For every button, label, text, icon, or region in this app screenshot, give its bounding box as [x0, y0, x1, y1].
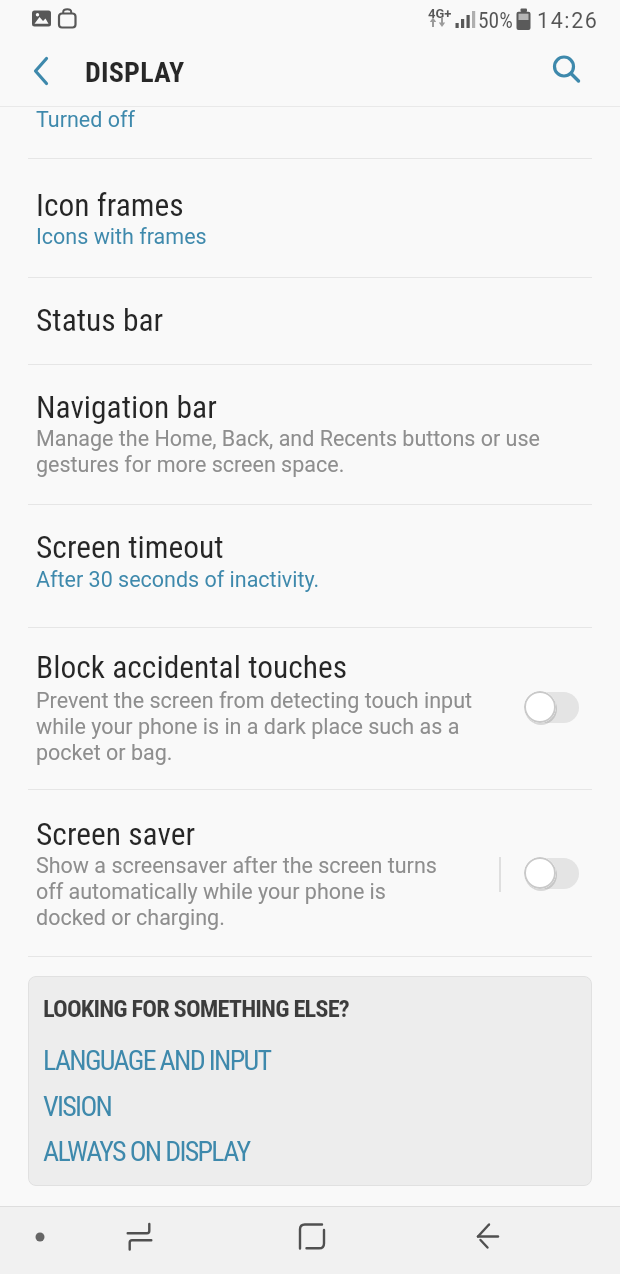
button[interactable]: [540, 40, 596, 96]
staticText: VISION: [43, 1090, 112, 1123]
button[interactable]: VISION: [36, 1082, 316, 1122]
staticText: After 30 seconds of inactivity.: [36, 567, 320, 592]
button[interactable]: Status bar: [0, 278, 620, 364]
staticText: Turned off: [36, 107, 135, 132]
button[interactable]: Navigation bar: [0, 365, 620, 504]
staticText: DISPLAY: [85, 56, 185, 89]
button[interactable]: Icon frames: [0, 159, 620, 277]
button[interactable]: [105, 1206, 175, 1274]
button[interactable]: LANGUAGE AND INPUT: [36, 1036, 316, 1076]
button[interactable]: Turned off: [0, 107, 620, 158]
button[interactable]: Screen timeout: [0, 505, 620, 627]
staticText: Navigation bar: [36, 389, 217, 426]
staticText: Show a screensaver after the screen turn…: [36, 853, 437, 930]
staticText: Manage the Home, Back, and Recents butto…: [36, 426, 540, 477]
staticText: Icons with frames: [36, 224, 207, 249]
staticText: 4G+: [428, 6, 452, 21]
staticText: 50%: [478, 8, 513, 33]
button[interactable]: [452, 1206, 522, 1274]
staticText: Status bar: [36, 302, 164, 339]
button[interactable]: [14, 1211, 66, 1263]
staticText: LOOKING FOR SOMETHING ELSE?: [43, 994, 349, 1023]
staticText: Block accidental touches: [36, 649, 348, 686]
button[interactable]: [277, 1206, 347, 1274]
staticText: Screen timeout: [36, 529, 224, 566]
staticText: Prevent the screen from detecting touch …: [36, 688, 473, 765]
button[interactable]: ALWAYS ON DISPLAY: [36, 1127, 316, 1167]
staticText: LANGUAGE AND INPUT: [43, 1044, 271, 1077]
button[interactable]: Screen saver: [0, 790, 620, 956]
button[interactable]: Block accidental touches: [0, 628, 620, 789]
staticText: Screen saver: [36, 816, 196, 853]
button[interactable]: [14, 44, 70, 100]
staticText: 14:26: [537, 8, 599, 33]
staticText: Icon frames: [36, 187, 184, 224]
staticText: ALWAYS ON DISPLAY: [43, 1135, 250, 1168]
